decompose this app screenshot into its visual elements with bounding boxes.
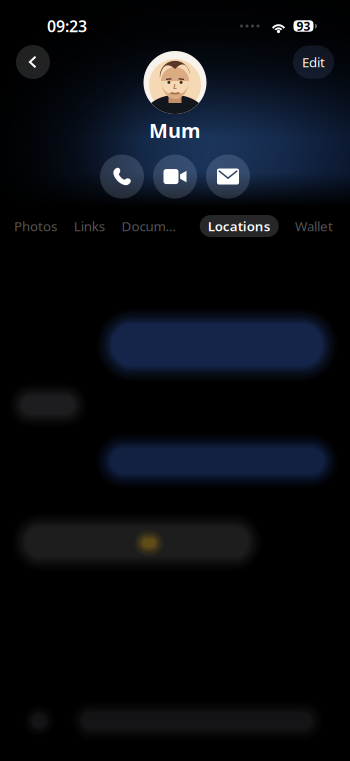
staticText: 93 — [296, 18, 310, 34]
button[interactable]: Photos — [14, 215, 57, 237]
button[interactable]: Links — [73, 215, 105, 237]
button[interactable]: Wallet — [295, 215, 333, 237]
staticText: Links — [74, 217, 105, 235]
button[interactable]: Documents — [121, 215, 183, 237]
button[interactable]: FaceTime — [153, 155, 197, 199]
staticText: Photos — [14, 217, 57, 235]
staticText: 09:23 — [47, 15, 87, 37]
staticText: Locations — [208, 217, 271, 235]
button[interactable]: Call — [100, 155, 144, 199]
staticText: Documents — [121, 217, 183, 235]
button[interactable]: Mail — [206, 155, 250, 199]
staticText: Wallet — [295, 217, 333, 235]
button[interactable]: Edit — [293, 45, 334, 78]
staticText: Mum — [149, 117, 201, 144]
staticText: Edit — [302, 53, 325, 71]
button[interactable]: Locations — [200, 215, 279, 237]
button[interactable]: Back — [16, 45, 50, 79]
